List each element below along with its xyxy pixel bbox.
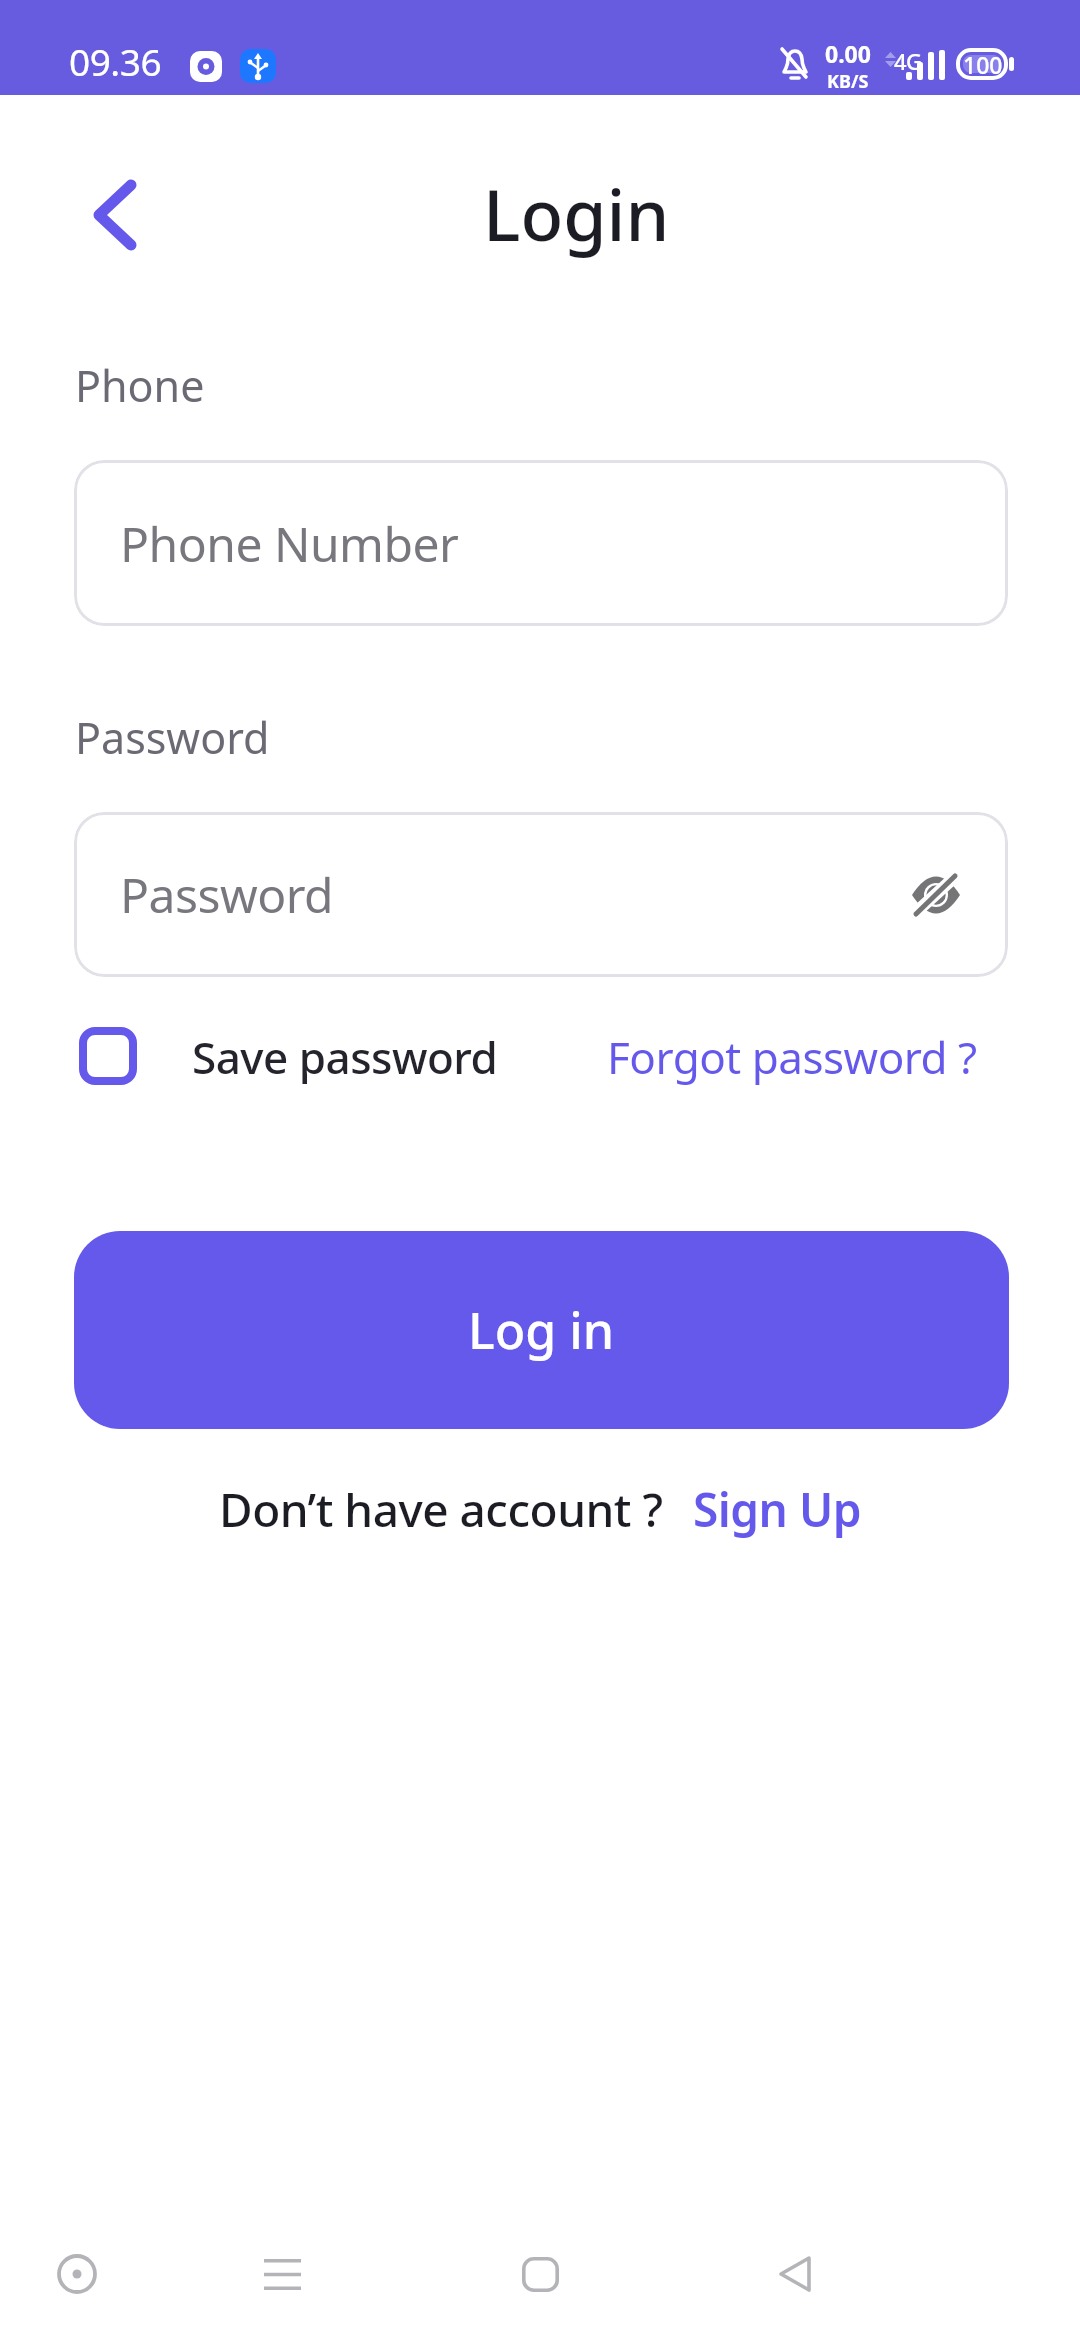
staticText: Phone [75, 356, 205, 415]
staticText: Save password [192, 1027, 498, 1087]
button[interactable]: Log in [74, 1231, 1009, 1429]
button[interactable]: Sign Up [693, 1478, 862, 1541]
staticText: Don’t have account ? [219, 1478, 663, 1541]
button[interactable] [242, 2234, 322, 2314]
staticText: 100 [963, 49, 1003, 80]
staticText: Sign Up [693, 1478, 862, 1541]
staticText: Log in [468, 1296, 615, 1364]
staticText: 0.00 [825, 38, 871, 69]
staticText: Phone Number [120, 511, 459, 576]
staticText: Password [120, 862, 334, 927]
staticText: KB/S [827, 69, 869, 94]
staticText: 09.36 [69, 36, 162, 78]
button[interactable] [908, 867, 964, 923]
button[interactable] [755, 2234, 835, 2314]
staticText: Login [483, 166, 670, 261]
button[interactable]: Forgot password ? [607, 1027, 977, 1087]
button[interactable] [70, 170, 160, 260]
button[interactable]: Password [74, 812, 1008, 977]
staticText: Password [75, 708, 270, 767]
button[interactable] [76, 1024, 140, 1088]
button[interactable]: Phone Number [74, 460, 1008, 626]
staticText: Forgot password ? [607, 1027, 977, 1087]
button[interactable] [500, 2234, 580, 2314]
button[interactable] [37, 2234, 117, 2314]
staticText: 4G [894, 46, 922, 76]
